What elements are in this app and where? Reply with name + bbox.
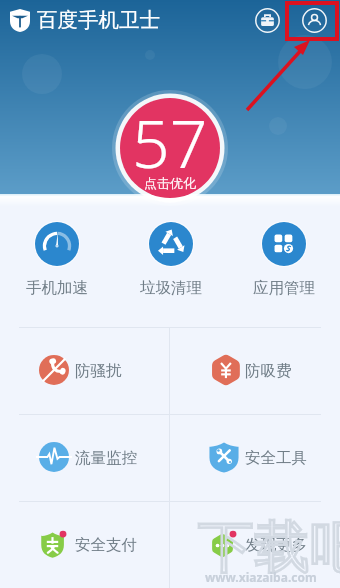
staticText: 百度手机卫士 xyxy=(37,7,160,33)
staticText: www.xiazaiba.com xyxy=(205,569,317,585)
staticText: 防吸费 xyxy=(245,361,292,381)
button[interactable]: Toolbox xyxy=(252,5,282,35)
button[interactable]: 手机加速 xyxy=(0,196,114,327)
staticText: 下载吧 xyxy=(198,512,340,583)
button[interactable]: 防骚扰 xyxy=(0,328,169,414)
button[interactable]: 安全支付 xyxy=(0,502,169,588)
button[interactable]: 安全工具 xyxy=(170,415,340,501)
staticText: 防骚扰 xyxy=(75,361,122,381)
staticText: 应用管理 xyxy=(253,278,315,298)
staticText: 安全工具 xyxy=(245,448,307,468)
staticText: 手机加速 xyxy=(26,278,88,298)
button[interactable]: Account xyxy=(299,5,329,35)
staticText: 垃圾清理 xyxy=(140,278,202,298)
button[interactable]: 防吸费 xyxy=(170,328,340,414)
staticText: 流量监控 xyxy=(75,448,137,468)
staticText: 安全支付 xyxy=(75,535,137,555)
staticText: 发现更多 xyxy=(245,535,307,555)
staticText: 点击优化 xyxy=(144,175,196,191)
button[interactable]: 57 xyxy=(110,88,230,208)
button[interactable]: 垃圾清理 xyxy=(114,196,227,327)
staticText: 57 xyxy=(132,97,208,187)
button[interactable]: 应用管理 xyxy=(227,196,340,327)
button[interactable]: 发现更多 xyxy=(170,502,340,588)
button[interactable]: 流量监控 xyxy=(0,415,169,501)
